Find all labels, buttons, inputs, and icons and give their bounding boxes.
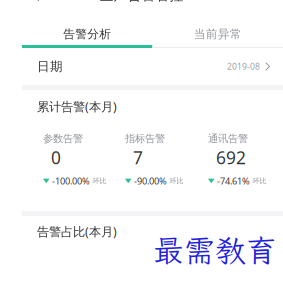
staticText: 2019-08 (227, 61, 260, 72)
staticText: 692 (216, 146, 246, 169)
staticText: 环比 (169, 176, 183, 185)
button[interactable]: 日期 (0, 48, 283, 85)
staticText: 0 (51, 146, 61, 169)
staticText: 参数告警 (43, 132, 83, 145)
staticText: -74.61% (217, 175, 250, 187)
staticText: 累计告警(本月) (37, 98, 117, 115)
staticText: 指标告警 (125, 132, 165, 145)
staticText: 7 (133, 146, 143, 169)
button[interactable]: 当前异常 (152, 15, 283, 48)
staticText: 告警占比(本月) (37, 223, 117, 240)
staticText: 通讯告警 (208, 132, 248, 145)
staticText: 当前异常 (194, 27, 242, 41)
button[interactable]: 告警分析 (22, 15, 152, 48)
staticText: 日期 (37, 59, 63, 74)
button[interactable]: 返回 (0, 0, 50, 12)
staticText: 告警分析 (63, 27, 111, 41)
staticText: -90.00% (134, 175, 167, 187)
staticText: 环比 (252, 176, 266, 185)
staticText: 最需教育 (153, 230, 277, 270)
staticText: -100.00% (52, 175, 90, 187)
staticText: 环比 (92, 176, 106, 185)
staticText: 生产告警管控 (99, 0, 183, 4)
